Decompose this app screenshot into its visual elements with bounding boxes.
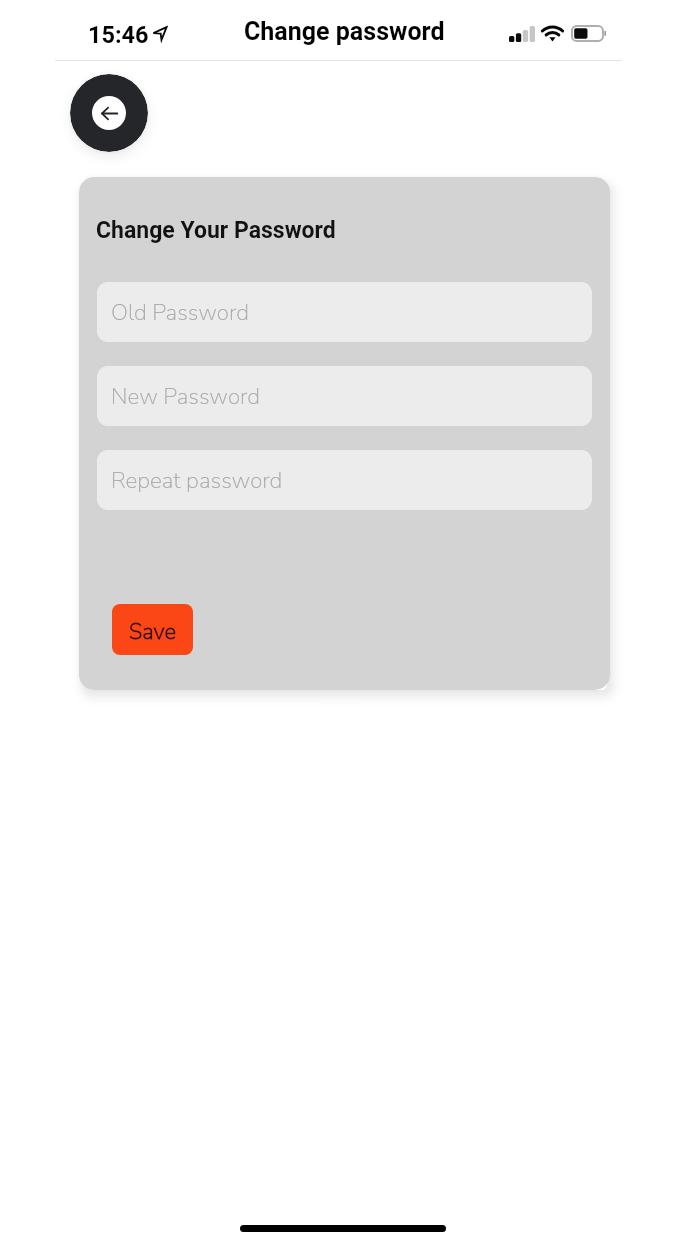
other: Location services active [152, 26, 168, 41]
button[interactable]: Save [112, 604, 193, 655]
staticText: Change Your Password [96, 217, 336, 244]
staticText: Save [129, 617, 176, 647]
button[interactable]: Old Password [97, 282, 592, 342]
staticText: Change password [244, 17, 445, 46]
other: Battery [571, 25, 607, 42]
button[interactable]: New Password [97, 366, 592, 426]
other: Wi-Fi [541, 24, 565, 42]
staticText: New Password [111, 381, 261, 412]
staticText: Repeat password [111, 465, 283, 496]
staticText: 15:46 [88, 21, 149, 49]
button[interactable]: Repeat password [97, 450, 592, 510]
other: Cellular signal [509, 26, 535, 42]
staticText: Old Password [111, 297, 249, 328]
button[interactable]: Back [70, 74, 148, 152]
